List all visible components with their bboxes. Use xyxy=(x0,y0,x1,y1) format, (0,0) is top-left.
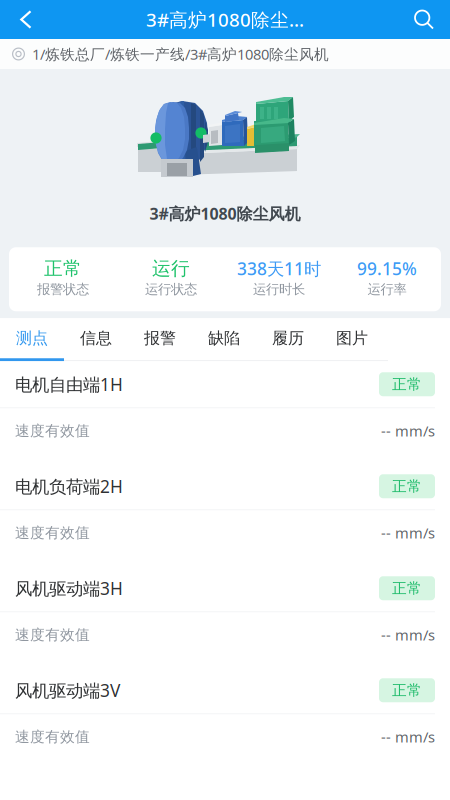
staticText: 速度有效值 xyxy=(15,422,90,440)
staticText: 电机负荷端2H xyxy=(15,475,123,498)
button[interactable]: Back xyxy=(6,0,46,39)
staticText: 速度有效值 xyxy=(15,524,90,542)
staticText: 运行 xyxy=(152,257,190,280)
staticText: 正常 xyxy=(392,477,422,495)
staticText: 运行率 xyxy=(367,281,406,297)
staticText: 信息 xyxy=(80,328,112,348)
staticText: 3#高炉1080除尘风机 xyxy=(149,203,300,224)
button[interactable]: 电机自由端1H xyxy=(0,361,450,407)
staticText: 图片 xyxy=(336,328,368,348)
button[interactable]: 履历 xyxy=(256,318,320,361)
staticText: 338天11时 xyxy=(237,257,321,280)
staticText: 运行时长 xyxy=(253,281,305,297)
staticText: 3#高炉1080除尘... xyxy=(146,7,304,32)
staticText: 1/炼铁总厂/炼铁一产线/3#高炉1080除尘风机 xyxy=(32,44,329,64)
staticText: 风机驱动端3V xyxy=(15,679,120,702)
staticText: 99.15% xyxy=(357,257,417,280)
staticText: 运行状态 xyxy=(145,281,197,297)
staticText: 正常 xyxy=(44,257,82,280)
button[interactable]: 图片 xyxy=(320,318,384,361)
staticText: 履历 xyxy=(272,328,304,348)
staticText: -- mm/s xyxy=(381,625,435,644)
staticText: -- mm/s xyxy=(381,523,435,542)
button[interactable]: Search xyxy=(404,0,444,39)
staticText: 正常 xyxy=(392,375,422,393)
staticText: -- mm/s xyxy=(381,421,435,440)
staticText: 电机自由端1H xyxy=(15,373,123,396)
button[interactable]: 电机负荷端2H xyxy=(0,463,450,509)
button[interactable]: 信息 xyxy=(64,318,128,361)
staticText: 速度有效值 xyxy=(15,728,90,746)
staticText: 缺陷 xyxy=(208,328,240,348)
staticText: 报警 xyxy=(144,328,176,348)
staticText: 正常 xyxy=(392,681,422,699)
staticText: 报警状态 xyxy=(37,281,89,297)
button[interactable]: 缺陷 xyxy=(192,318,256,361)
staticText: 风机驱动端3H xyxy=(15,577,123,600)
staticText: -- mm/s xyxy=(381,727,435,746)
button[interactable]: 风机驱动端3V xyxy=(0,667,450,713)
staticText: 正常 xyxy=(392,579,422,597)
staticText: 测点 xyxy=(16,328,48,348)
button[interactable]: 风机驱动端3H xyxy=(0,565,450,611)
button[interactable]: 报警 xyxy=(128,318,192,361)
staticText: 速度有效值 xyxy=(15,626,90,644)
button[interactable]: 测点 xyxy=(0,318,64,361)
